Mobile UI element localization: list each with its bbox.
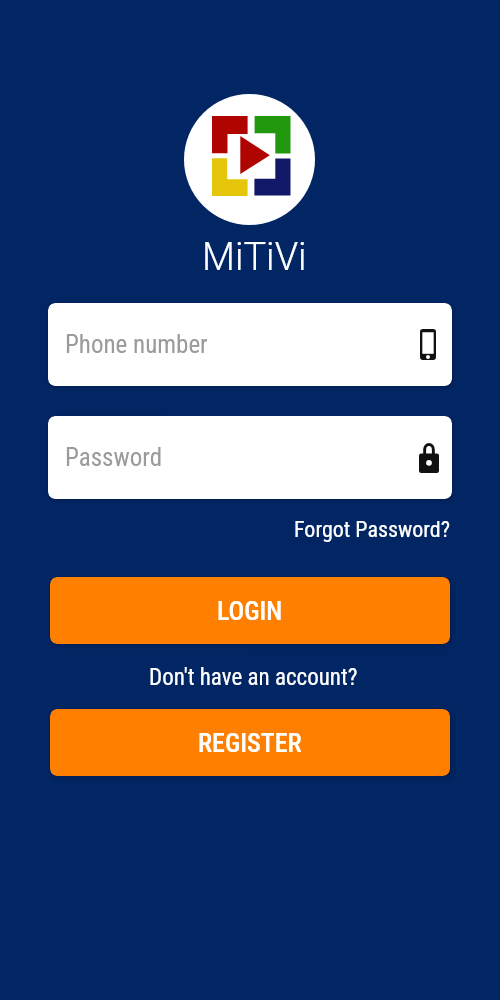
button[interactable]: Forgot Password? [294, 517, 451, 543]
staticText: Password [65, 443, 163, 472]
staticText: LOGIN [217, 596, 283, 626]
staticText: Forgot Password? [294, 517, 451, 543]
other: Show password [419, 443, 439, 473]
staticText: Phone number [65, 330, 208, 359]
other: Phone number [420, 329, 436, 360]
staticText: Don't have an account? [149, 664, 358, 691]
staticText: REGISTER [198, 728, 302, 758]
button[interactable]: Phone number [48, 303, 452, 386]
staticText: MiTiVi [202, 235, 307, 280]
button[interactable]: REGISTER [50, 709, 450, 776]
button[interactable]: Don't have an account? [149, 664, 358, 691]
button[interactable]: Password [48, 416, 452, 499]
button[interactable]: LOGIN [50, 577, 450, 644]
